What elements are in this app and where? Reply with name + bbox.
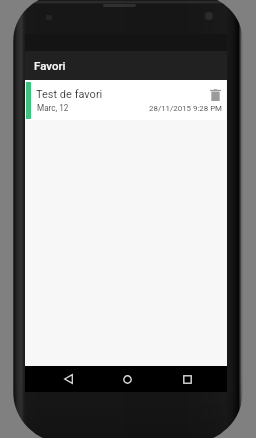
button[interactable]: Back xyxy=(58,366,78,392)
button[interactable]: Recents xyxy=(177,366,197,392)
staticText: 28/11/2015 9:28 PM xyxy=(112,104,222,113)
staticText: Favori xyxy=(34,59,66,72)
button[interactable]: Test de favori xyxy=(26,80,226,120)
staticText: Test de favori xyxy=(36,88,103,101)
button[interactable]: Delete xyxy=(206,87,224,103)
staticText: Marc, 12 xyxy=(37,103,69,113)
button[interactable]: Home xyxy=(117,366,137,392)
